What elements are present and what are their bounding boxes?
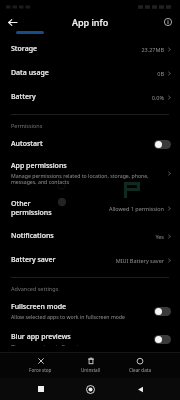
button[interactable]: Back	[4, 14, 20, 30]
button[interactable]: Data usage	[0, 61, 180, 85]
staticText: Battery saver	[11, 255, 63, 265]
button[interactable]: Other permissions	[0, 192, 180, 224]
staticText: Allowed 1 permission	[108, 205, 164, 212]
staticText: Storage	[11, 44, 76, 54]
staticText: 0B	[157, 70, 164, 77]
staticText: Manage permissions related to location, …	[11, 172, 157, 186]
staticText: Yes	[155, 233, 164, 240]
button[interactable]: Toggle	[154, 335, 171, 344]
button[interactable]: Toggle	[154, 307, 171, 316]
staticText: Data usage	[11, 68, 84, 78]
staticText: Advanced settings	[11, 285, 59, 292]
button[interactable]: Back	[131, 380, 149, 398]
staticText: Other permissions	[11, 199, 59, 217]
button[interactable]: Notifications	[0, 224, 180, 248]
button[interactable]: App permissions	[0, 155, 180, 192]
button[interactable]: Fullscreen mode	[0, 296, 180, 326]
staticText: App permissions	[11, 161, 67, 171]
staticText: 0.0%	[151, 94, 164, 101]
button[interactable]: Battery saver	[0, 248, 180, 272]
staticText: 23.27MB	[141, 46, 164, 53]
staticText: Notifications	[11, 231, 83, 241]
staticText: MIUI Battery saver	[115, 257, 164, 264]
staticText: Force stop	[29, 367, 52, 373]
button[interactable]: Autostart	[0, 133, 180, 155]
button[interactable]: Force stop	[26, 355, 55, 375]
staticText: Clear data	[129, 367, 151, 373]
staticText: Uninstall	[81, 367, 101, 373]
staticText: Blur app previews in Recents	[11, 343, 81, 346]
button[interactable]: Uninstall	[78, 355, 104, 375]
button[interactable]: Blur app previews	[0, 326, 180, 352]
staticText: Autostart	[11, 139, 43, 149]
staticText: Blur app previews	[11, 332, 71, 342]
button[interactable]: Clear data	[126, 355, 154, 375]
staticText: Fullscreen mode	[11, 302, 67, 312]
button[interactable]: Toggle	[154, 140, 171, 149]
staticText: App info	[72, 16, 109, 28]
button[interactable]: Battery	[0, 85, 180, 109]
staticText: Permissions	[11, 122, 43, 129]
button[interactable]: Storage	[0, 37, 180, 61]
staticText: Allow selected apps to work in fullscree…	[11, 313, 126, 320]
staticText: Battery	[11, 92, 81, 102]
button[interactable]: Recents	[32, 380, 50, 398]
button[interactable]: App details	[161, 15, 175, 29]
button[interactable]: Home	[81, 380, 99, 398]
